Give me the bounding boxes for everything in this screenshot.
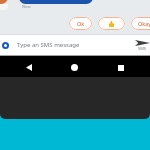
staticText: Ok [77, 20, 85, 27]
staticText: Now [22, 4, 31, 9]
staticText: SMS [138, 46, 147, 51]
staticText: Type an SMS message [17, 41, 80, 49]
button[interactable]: Send SMS [134, 40, 150, 51]
button[interactable]: Okay [131, 17, 150, 30]
button[interactable]: Recent apps [114, 61, 127, 74]
button[interactable]: Home [68, 61, 81, 74]
button[interactable]: Ok [69, 17, 92, 30]
button[interactable] [98, 17, 125, 30]
button[interactable]: Back [22, 61, 35, 74]
button[interactable]: SMS settings [2, 42, 9, 49]
staticText: Okay [138, 20, 150, 27]
